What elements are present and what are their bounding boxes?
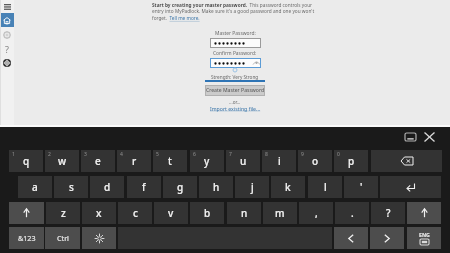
button[interactable]: Shift	[407, 202, 441, 224]
staticText: a	[32, 180, 38, 194]
staticText: 2	[48, 151, 51, 158]
staticText: f	[142, 180, 146, 194]
staticText: o	[312, 154, 319, 168]
button[interactable]: ?	[371, 202, 405, 224]
button[interactable]: 1	[9, 150, 43, 172]
button[interactable]: h	[199, 176, 233, 198]
staticText: .	[351, 206, 354, 220]
button[interactable]	[210, 38, 261, 48]
button[interactable]: 0	[334, 150, 368, 172]
button[interactable]: 9	[298, 150, 332, 172]
staticText: Strength: Very Strong	[211, 74, 259, 80]
staticText: Master Password:	[215, 30, 256, 37]
button[interactable]: &123	[9, 227, 44, 249]
staticText: l	[324, 180, 327, 194]
staticText: q	[23, 154, 30, 168]
button[interactable]: Left	[334, 227, 368, 249]
button[interactable]: Enter	[380, 176, 441, 198]
staticText: 3	[84, 151, 87, 158]
staticText: 1	[12, 151, 15, 158]
staticText: 9	[301, 151, 304, 158]
staticText: c	[133, 206, 138, 220]
button[interactable]: n	[227, 202, 261, 224]
staticText: k	[285, 180, 291, 194]
button[interactable]: 7	[226, 150, 260, 172]
button[interactable]: l	[308, 176, 342, 198]
button[interactable]: f	[127, 176, 161, 198]
staticText: ?	[5, 43, 9, 55]
button[interactable]: d	[90, 176, 124, 198]
button[interactable]: 6	[190, 150, 224, 172]
staticText: Confirm Password:	[213, 50, 257, 57]
staticText: ,	[315, 206, 318, 220]
staticText: i	[278, 154, 281, 168]
staticText: b	[204, 206, 211, 220]
staticText: j	[251, 180, 254, 194]
button[interactable]: Home	[0, 13, 14, 27]
staticText: d	[104, 180, 111, 194]
button[interactable]: Language	[407, 227, 441, 249]
staticText: 8	[265, 151, 268, 158]
button[interactable]: 8	[262, 150, 296, 172]
button[interactable]: 4	[117, 150, 151, 172]
staticText: w	[58, 154, 67, 168]
staticText: 0	[337, 151, 340, 158]
staticText: r	[132, 154, 137, 168]
staticText: ...or...	[229, 99, 241, 105]
button[interactable]: z	[46, 202, 80, 224]
staticText: g	[177, 180, 184, 194]
button[interactable]: Right	[370, 227, 404, 249]
button[interactable]: Import existing file...	[210, 105, 261, 112]
button[interactable]: Show password	[251, 58, 261, 68]
button[interactable]: 3	[81, 150, 115, 172]
button[interactable]: .	[335, 202, 369, 224]
button[interactable]: Language	[0, 56, 14, 70]
button[interactable]: ,	[299, 202, 333, 224]
button[interactable]: s	[54, 176, 88, 198]
staticText: '	[360, 180, 363, 194]
staticText: 7	[229, 151, 232, 158]
button[interactable]: Settings	[0, 28, 14, 42]
staticText: p	[348, 154, 355, 168]
staticText: y	[204, 154, 210, 168]
button[interactable]: Menu	[0, 0, 14, 13]
button[interactable]: Create Master Password	[205, 85, 265, 96]
button[interactable]: b	[190, 202, 224, 224]
staticText: u	[240, 154, 247, 168]
staticText: Import existing file...	[210, 105, 261, 112]
staticText: n	[241, 206, 248, 220]
button[interactable]: m	[263, 202, 297, 224]
staticText: e	[95, 154, 101, 168]
staticText: ?	[386, 206, 391, 220]
button[interactable]: g	[163, 176, 197, 198]
button[interactable]: 5	[153, 150, 187, 172]
staticText: 5	[156, 151, 159, 158]
staticText: s	[69, 180, 74, 194]
staticText: t	[168, 154, 172, 168]
button[interactable]: 2	[45, 150, 79, 172]
staticText: x	[96, 206, 102, 220]
button[interactable]: Shift	[9, 202, 44, 224]
staticText: Ctrl	[57, 233, 69, 243]
button[interactable]: Help	[0, 42, 14, 56]
staticText: v	[168, 206, 174, 220]
staticText: ENG	[419, 231, 430, 238]
button[interactable]: x	[82, 202, 116, 224]
staticText: 6	[193, 151, 196, 158]
button[interactable]: Emoji	[82, 227, 116, 249]
button[interactable]: j	[235, 176, 269, 198]
button[interactable]: k	[271, 176, 305, 198]
button[interactable]: Close keyboard	[419, 128, 440, 146]
staticText: m	[275, 206, 285, 220]
button[interactable]: '	[344, 176, 378, 198]
staticText: Start by creating your master password. …	[152, 2, 315, 22]
button[interactable]: c	[118, 202, 152, 224]
button[interactable]: v	[154, 202, 188, 224]
staticText: Create Master Password	[206, 87, 265, 94]
button[interactable]: Ctrl	[45, 227, 80, 249]
button[interactable]: Backspace	[371, 150, 442, 172]
button[interactable]: Dock keyboard	[400, 128, 421, 146]
button[interactable]: a	[18, 176, 52, 198]
button[interactable]: Show password	[210, 58, 261, 68]
